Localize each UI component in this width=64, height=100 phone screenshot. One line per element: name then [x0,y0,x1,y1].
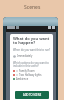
button[interactable]: Immediately [13,54,51,58]
staticText: Which actions do you want to include in … [13,61,51,67]
button[interactable]: Two Hallway lights [13,73,51,77]
staticText: What do you want to happen? [13,36,51,45]
staticText: ADD TO SCENE [23,93,42,97]
button[interactable]: Family Room [13,69,51,73]
button[interactable]: ADD TO SCENE [15,91,49,99]
staticText: Two Hallway lights [19,73,42,77]
staticText: Family Room [19,69,35,73]
staticText: Scenes [24,4,41,11]
button[interactable]: Ambience [13,77,51,81]
staticText: When do you want this to run? [13,48,51,52]
staticText: Immediately [17,54,33,58]
staticText: Ambience [16,77,29,81]
